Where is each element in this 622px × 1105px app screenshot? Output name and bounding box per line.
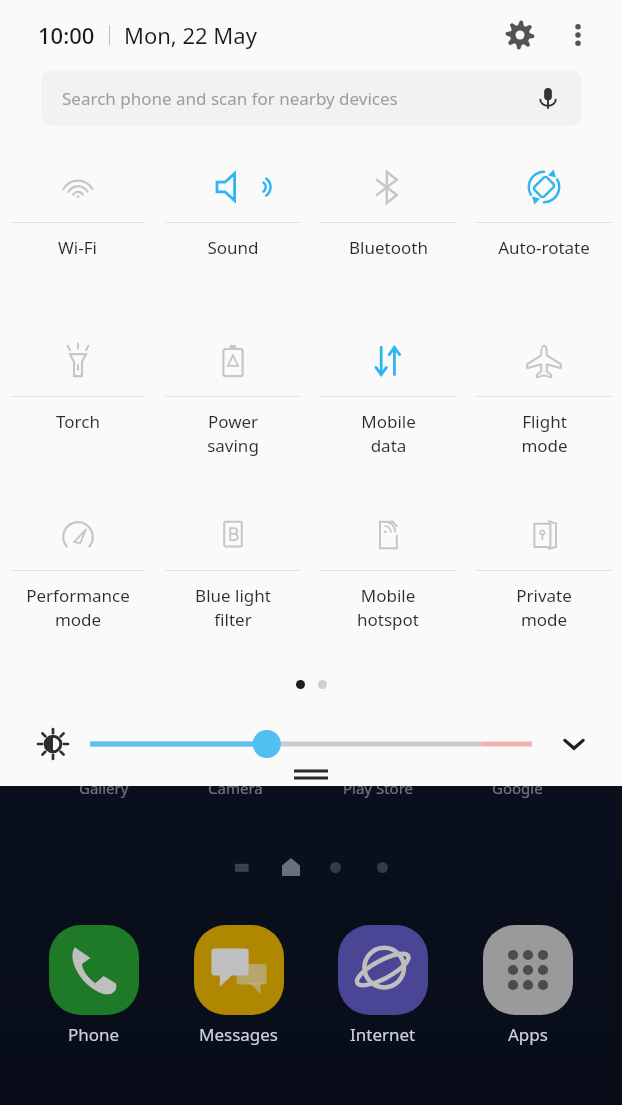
- button[interactable]: More options: [554, 11, 602, 59]
- button[interactable]: Settings: [496, 11, 544, 59]
- button[interactable]: Sound: [155, 146, 310, 320]
- staticText: Gallery: [79, 778, 129, 798]
- staticText: Camera: [208, 778, 263, 798]
- button[interactable]: Flight mode: [466, 320, 622, 494]
- button[interactable]: Mobile data: [310, 320, 466, 494]
- staticText: Flight mode: [521, 410, 568, 457]
- staticText: Bluetooth: [349, 236, 428, 259]
- button[interactable]: Performance mode: [0, 494, 155, 668]
- button[interactable]: Blue light filter: [155, 494, 310, 668]
- button[interactable]: Brightness: [90, 724, 532, 764]
- staticText: Play Store: [343, 778, 413, 798]
- button[interactable]: Apps: [477, 925, 579, 1046]
- button[interactable]: Search phone and scan for nearby devices: [41, 70, 581, 126]
- staticText: Mon, 22 May: [124, 20, 257, 50]
- staticText: Torch: [56, 410, 100, 433]
- staticText: 10:00: [38, 20, 95, 50]
- button[interactable]: Mobile hotspot: [310, 494, 466, 668]
- button[interactable]: Wi-Fi: [0, 146, 155, 320]
- staticText: Google: [492, 778, 543, 798]
- staticText: Blue light filter: [195, 584, 271, 631]
- staticText: Performance mode: [26, 584, 130, 631]
- staticText: Auto-rotate: [498, 236, 590, 259]
- staticText: Internet: [350, 1023, 416, 1046]
- staticText: Power saving: [207, 410, 259, 457]
- button[interactable]: Phone: [43, 925, 145, 1046]
- button[interactable]: Expand brightness settings: [552, 722, 596, 766]
- staticText: Apps: [508, 1023, 548, 1046]
- staticText: Phone: [68, 1023, 120, 1046]
- staticText: Wi-Fi: [58, 236, 97, 259]
- staticText: Sound: [207, 236, 259, 259]
- button[interactable]: Internet: [332, 925, 434, 1046]
- staticText: Messages: [199, 1023, 279, 1046]
- button[interactable]: Auto-rotate: [466, 146, 622, 320]
- button[interactable]: Private mode: [466, 494, 622, 668]
- button[interactable]: Bluetooth: [310, 146, 466, 320]
- button[interactable]: Torch: [0, 320, 155, 494]
- staticText: Search phone and scan for nearby devices: [62, 87, 398, 110]
- button[interactable]: Power saving: [155, 320, 310, 494]
- staticText: Private mode: [516, 584, 572, 631]
- button[interactable]: Messages: [188, 925, 290, 1046]
- staticText: Mobile hotspot: [357, 584, 419, 631]
- staticText: Mobile data: [361, 410, 416, 457]
